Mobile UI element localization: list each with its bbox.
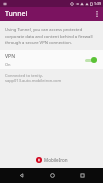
button[interactable]: Home xyxy=(42,168,62,183)
button[interactable]: Recent apps xyxy=(72,168,92,183)
staticText: Tunnel xyxy=(5,9,28,19)
staticText: MobileIron xyxy=(44,157,68,163)
button[interactable]: Back xyxy=(11,168,31,183)
staticText: On xyxy=(5,62,11,67)
button[interactable]: VPN toggle, on xyxy=(84,55,98,65)
button[interactable]: More options xyxy=(91,7,103,21)
staticText: 1:39 xyxy=(94,1,101,6)
staticText: Connected to tenity-sapp013.auto.mobilei… xyxy=(5,73,98,83)
staticText: Using Tunnel, you can access protected c… xyxy=(5,27,98,45)
button[interactable]: VPN xyxy=(0,50,103,69)
staticText: VPN xyxy=(5,53,16,60)
